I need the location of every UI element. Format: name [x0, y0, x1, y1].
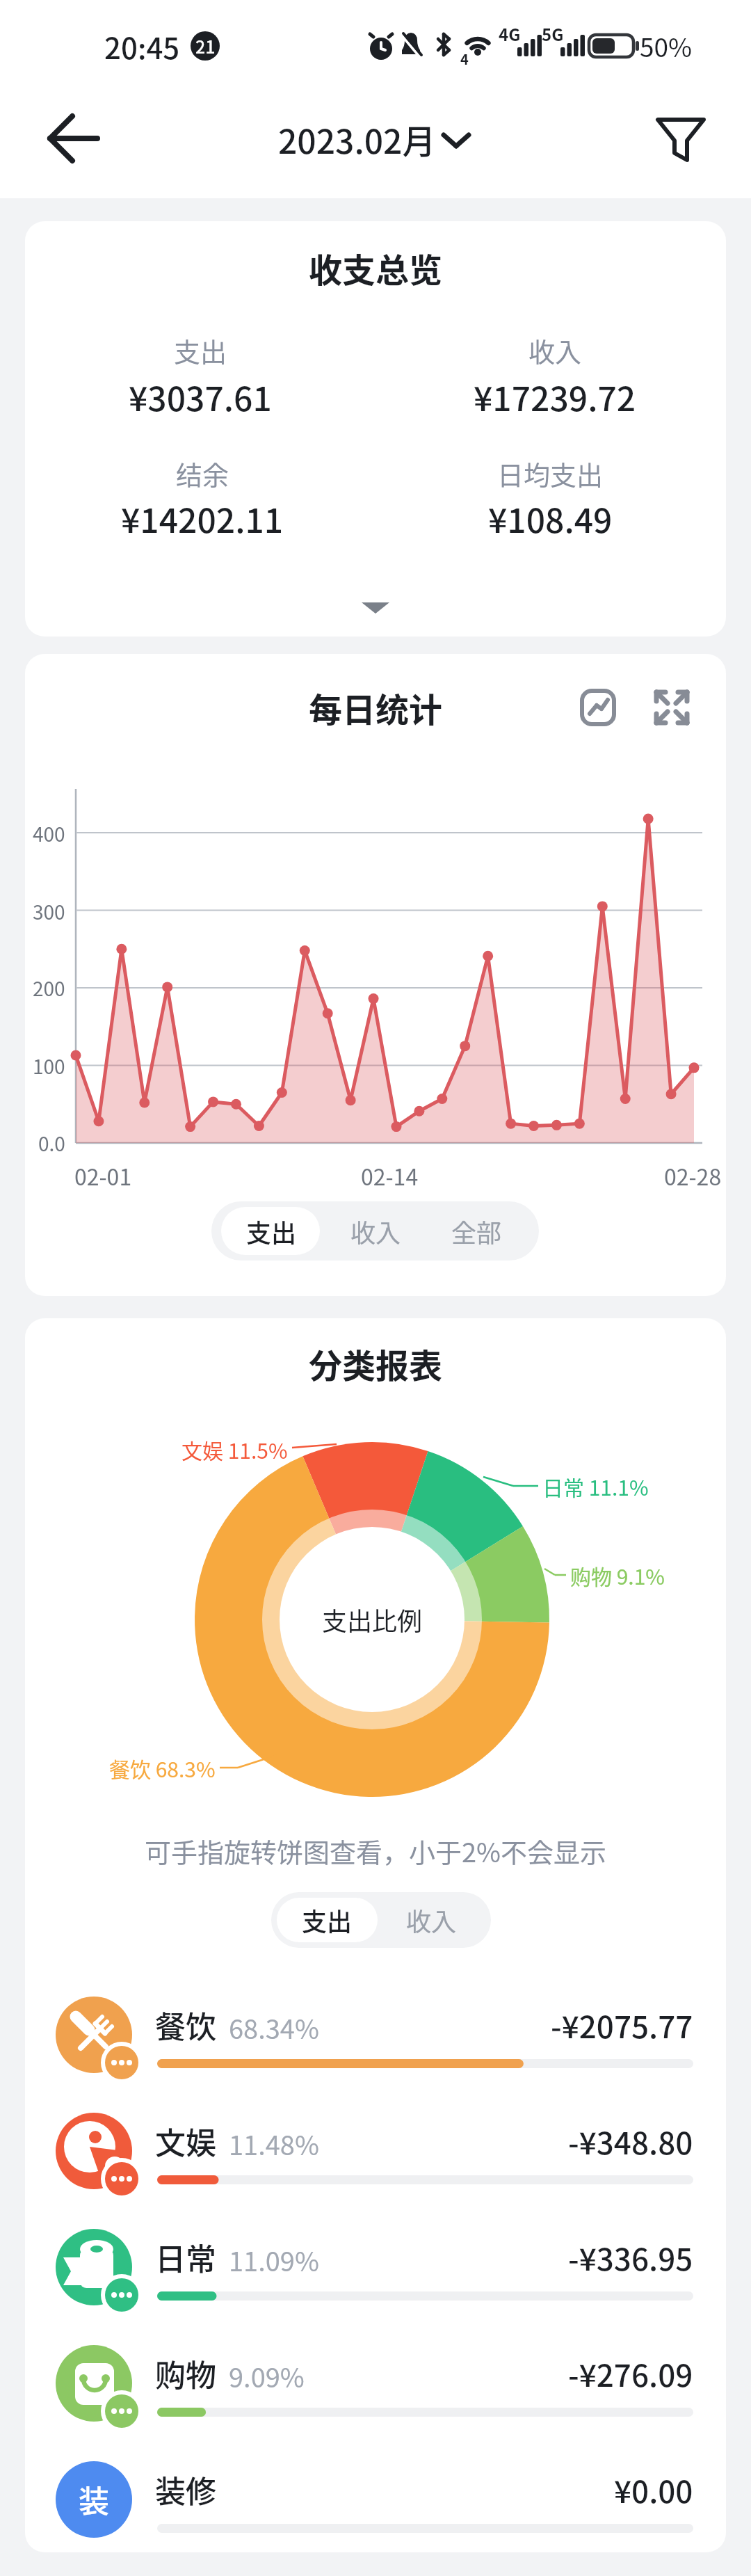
staticText: ¥108.49: [488, 494, 613, 543]
staticText: 02-28: [664, 1160, 722, 1192]
staticText: 300: [33, 897, 65, 926]
staticText: 收入: [406, 1902, 457, 1938]
staticText: 购物: [155, 2351, 216, 2396]
staticText: 收入: [350, 1213, 401, 1249]
staticText: ¥0.00: [614, 2467, 693, 2512]
staticText: 2023.02月: [278, 115, 436, 163]
staticText: 餐饮 68.3%: [109, 1753, 216, 1783]
staticText: 收支总览: [309, 243, 443, 292]
staticText: 68.34%: [229, 2008, 319, 2047]
staticText: 购物 9.1%: [570, 1560, 665, 1590]
staticText: 支出: [302, 1902, 353, 1938]
staticText: 文娱: [155, 2119, 216, 2163]
staticText: 20:45: [104, 25, 180, 67]
staticText: 02-01: [74, 1160, 132, 1192]
staticText: -¥2075.77: [551, 2003, 693, 2047]
staticText: 50%: [640, 27, 693, 65]
staticText: 装修: [155, 2467, 216, 2512]
staticText: 200: [33, 974, 65, 1002]
staticText: 4G: [499, 22, 521, 46]
staticText: 4: [460, 49, 469, 69]
staticText: ¥17239.72: [474, 372, 636, 421]
staticText: -¥348.80: [568, 2119, 693, 2163]
staticText: 可手指旋转饼图查看，小于2%不会显示: [145, 1832, 607, 1870]
staticText: 全部: [451, 1213, 502, 1249]
staticText: 支出: [174, 331, 227, 369]
staticText: 日均支出: [497, 454, 604, 493]
staticText: 收入: [528, 331, 582, 369]
staticText: 02-14: [361, 1160, 419, 1192]
staticText: 0.0: [38, 1129, 65, 1158]
staticText: 日常 11.1%: [542, 1471, 649, 1501]
staticText: 文娱 11.5%: [181, 1434, 288, 1464]
staticText: 400: [33, 819, 65, 848]
staticText: 日常: [155, 2235, 216, 2280]
staticText: 11.48%: [229, 2125, 319, 2163]
staticText: -¥276.09: [568, 2351, 693, 2396]
staticText: 结余: [176, 454, 229, 493]
staticText: ¥3037.61: [129, 372, 272, 421]
staticText: 9.09%: [229, 2357, 305, 2395]
staticText: ¥14202.11: [121, 494, 284, 543]
staticText: 每日统计: [309, 683, 443, 732]
staticText: 5G: [542, 22, 564, 46]
staticText: 支出比例: [322, 1601, 423, 1638]
staticText: 100: [33, 1052, 65, 1080]
staticText: -¥336.95: [568, 2235, 693, 2280]
staticText: 11.09%: [229, 2241, 319, 2279]
staticText: 分类报表: [309, 1339, 443, 1388]
staticText: 支出: [246, 1213, 297, 1249]
staticText: 装: [79, 2477, 109, 2522]
staticText: 21: [195, 33, 216, 58]
staticText: 餐饮: [155, 2003, 216, 2047]
